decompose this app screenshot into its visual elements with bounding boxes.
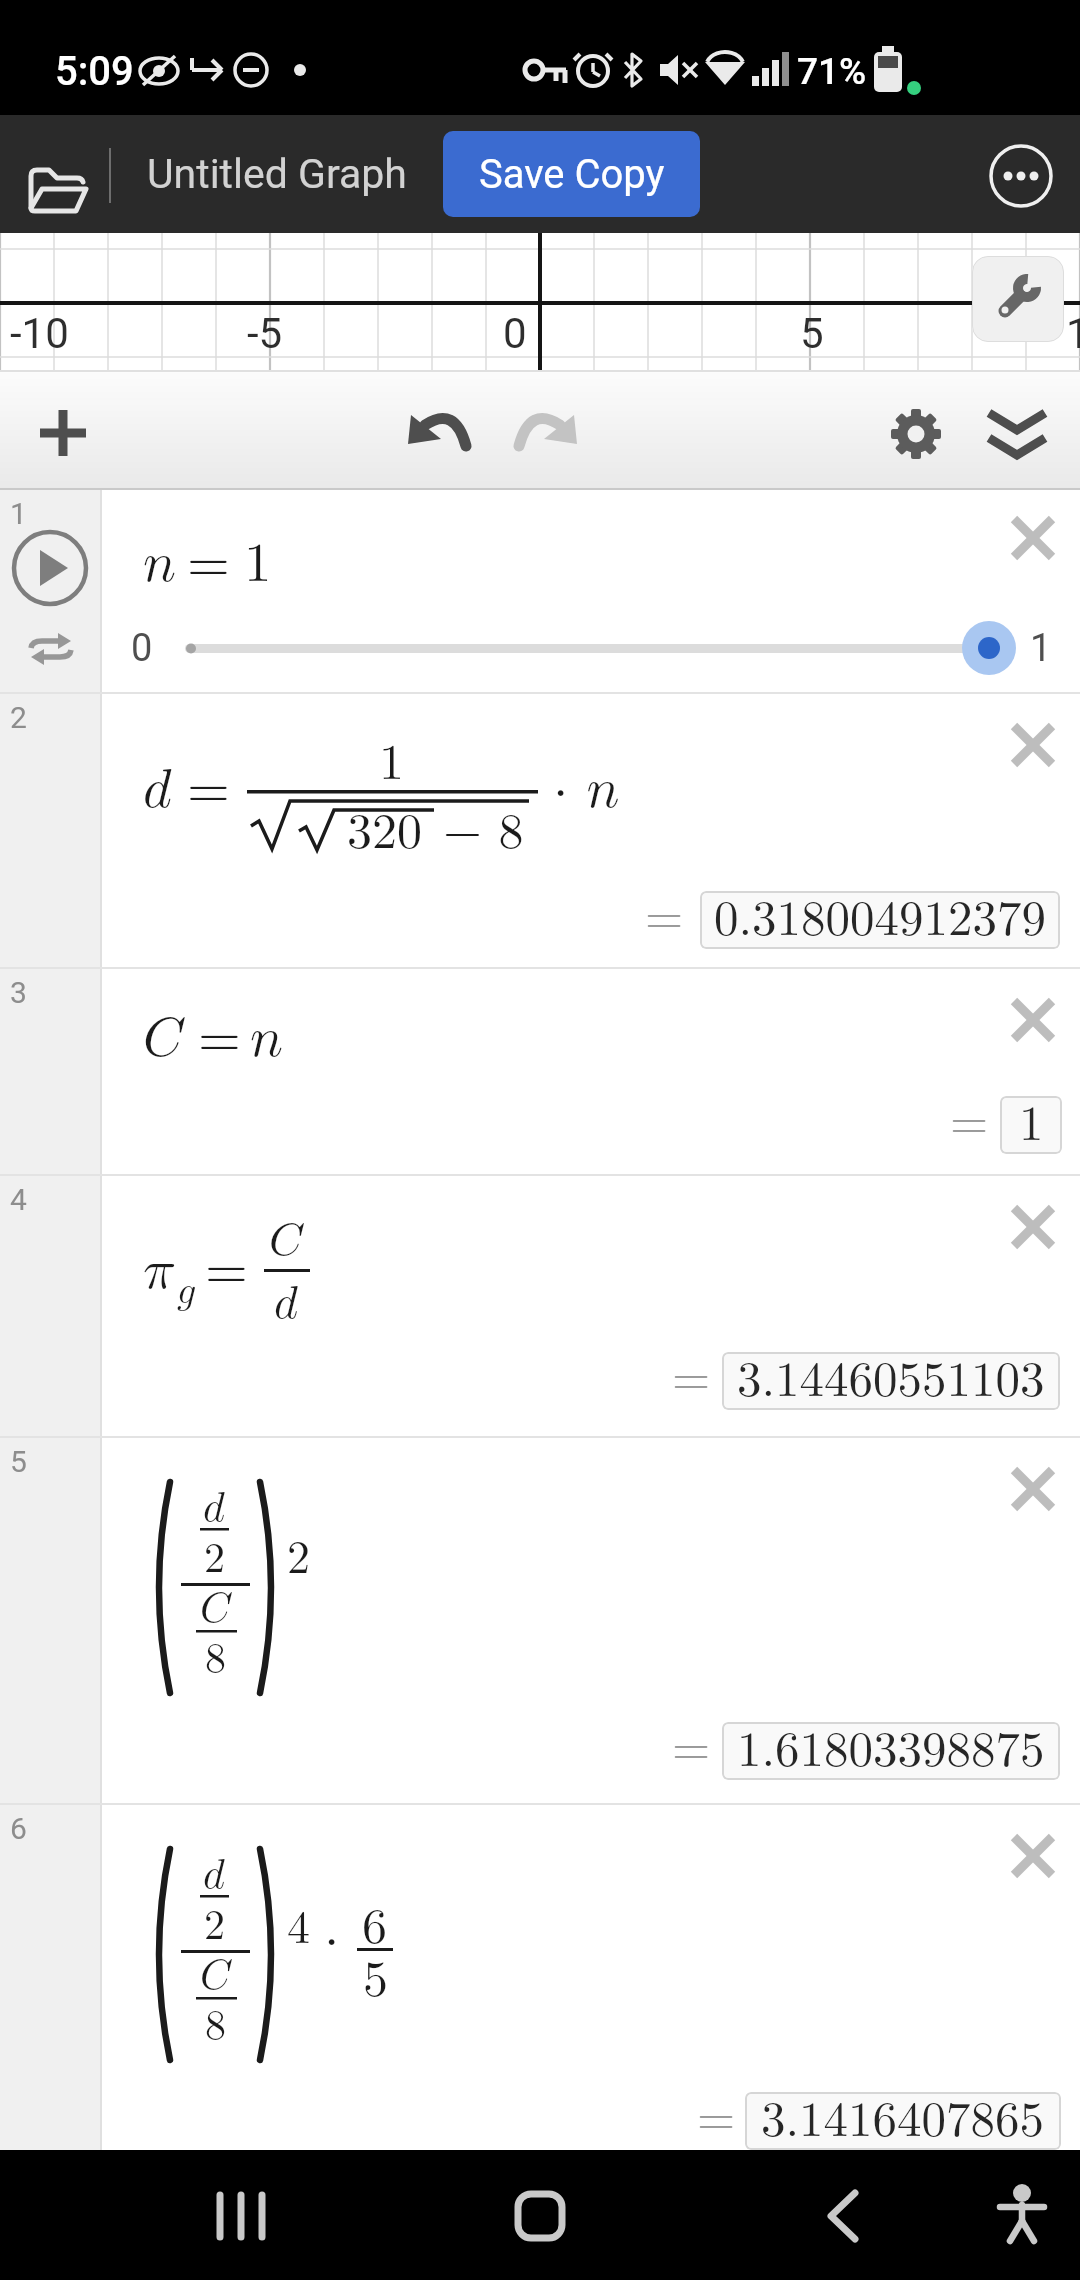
staticText: 𝐶 [143, 1012, 183, 1067]
staticText: 2 [204, 1538, 226, 1580]
button[interactable] [980, 2175, 1064, 2255]
staticText: = [187, 763, 230, 818]
button[interactable]: 𝑛 [102, 490, 1080, 692]
staticText: 𝐶 [200, 1955, 231, 1997]
button[interactable] [20, 150, 98, 205]
staticText: = [697, 2095, 736, 2144]
staticText: 4 [10, 1182, 27, 1217]
staticText: 1.61803398875 [737, 1727, 1045, 1776]
staticText: 1 [244, 537, 272, 592]
staticText: = [950, 1099, 989, 1148]
staticText: 5 [363, 1956, 388, 2006]
staticText: − 8 [443, 808, 524, 858]
button[interactable] [1010, 722, 1056, 768]
staticText: 3.1416407865 [761, 2097, 1045, 2146]
button[interactable] [962, 621, 1016, 675]
staticText: · 𝑛 [553, 763, 620, 818]
staticText: 8 [205, 2005, 227, 2047]
staticText: 3.14460551103 [737, 1357, 1045, 1406]
staticText: 0 [131, 626, 153, 671]
button[interactable]: 𝑑 [102, 1805, 1080, 2150]
staticText: 𝑛 [143, 537, 177, 592]
staticText: -5 [247, 309, 283, 358]
button[interactable] [1010, 997, 1056, 1043]
staticText: 1 [1030, 626, 1052, 671]
button[interactable] [1010, 1833, 1056, 1879]
staticText: · [324, 1912, 340, 1967]
staticText: -10 [10, 309, 69, 358]
staticText: 71% [797, 50, 867, 93]
staticText: 1 [379, 739, 404, 789]
staticText: 𝑑 [143, 763, 172, 818]
staticText: 𝑔 [177, 1272, 196, 1310]
button[interactable] [505, 395, 585, 465]
staticText: Untitled Graph [147, 150, 407, 198]
staticText: 1 [10, 496, 27, 531]
button[interactable] [1010, 1466, 1056, 1512]
staticText: 5 [10, 1444, 27, 1479]
button[interactable] [498, 2175, 582, 2255]
button[interactable] [880, 398, 952, 470]
staticText: 1 [1019, 1101, 1044, 1150]
staticText: 8 [205, 1638, 227, 1680]
button[interactable] [1010, 515, 1056, 561]
button[interactable]: 𝐶 [102, 969, 1080, 1174]
staticText: 2 [287, 1536, 310, 1582]
staticText: 320 [347, 808, 422, 858]
staticText: Save Copy [479, 151, 665, 198]
button[interactable]: 𝑑 [102, 1438, 1080, 1803]
staticText: 3 [10, 975, 27, 1010]
button[interactable]: 𝜋 [102, 1176, 1080, 1436]
button[interactable] [1010, 1204, 1056, 1250]
button[interactable] [12, 530, 88, 606]
staticText: 𝐶 [200, 1588, 231, 1630]
staticText: = [205, 1244, 248, 1299]
staticText: 10 [1066, 309, 1080, 358]
staticText: 6 [362, 1903, 387, 1953]
staticText: 𝜋 [143, 1244, 175, 1299]
staticText: = [672, 1725, 711, 1774]
button[interactable] [200, 2175, 284, 2255]
button[interactable] [972, 256, 1064, 342]
button[interactable] [400, 395, 480, 465]
button[interactable] [20, 390, 106, 476]
button[interactable] [800, 2175, 884, 2255]
staticText: = [187, 537, 230, 592]
button[interactable] [980, 395, 1055, 470]
staticText: = [645, 894, 684, 943]
staticText: 2 [10, 700, 27, 735]
staticText: 0 [503, 309, 527, 358]
button[interactable] [28, 628, 74, 670]
staticText: 4 [287, 1906, 310, 1952]
button[interactable] [988, 143, 1054, 209]
staticText: 𝑑 [274, 1281, 298, 1327]
staticText: 𝑑 [203, 1487, 225, 1529]
button[interactable]: 𝑑 [102, 694, 1080, 967]
staticText: 𝑛 [250, 1012, 284, 1067]
staticText: 2 [204, 1905, 226, 1947]
staticText: 5 [800, 309, 824, 358]
staticText: 0.318004912379 [714, 896, 1047, 945]
staticText: 𝑑 [203, 1854, 225, 1896]
staticText: = [198, 1012, 241, 1067]
staticText: 5:09 [55, 48, 134, 95]
staticText: 6 [10, 1811, 27, 1846]
staticText: = [672, 1355, 711, 1404]
button[interactable]: Save Copy [443, 131, 700, 217]
staticText: 𝐶 [269, 1218, 302, 1264]
